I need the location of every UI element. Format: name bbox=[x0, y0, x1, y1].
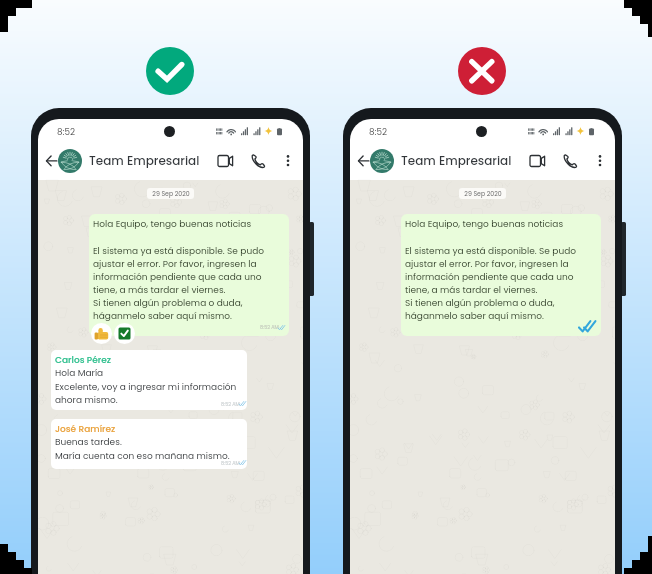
staticText: Hola Equipo, tengo buenas noticias El si… bbox=[93, 218, 264, 322]
button[interactable]: More options bbox=[278, 151, 298, 171]
button[interactable]: Back bbox=[42, 149, 66, 173]
staticText: 29 Sep 2020 bbox=[464, 189, 502, 198]
staticText: Carlos Pérez bbox=[55, 354, 111, 367]
staticText: 8:52 AM bbox=[221, 401, 240, 408]
button[interactable]: Voice call bbox=[561, 152, 581, 172]
button[interactable]: Team Empresarial profile bbox=[370, 149, 394, 173]
staticText: Buenas tardes. María cuenta con eso maña… bbox=[55, 436, 230, 462]
button[interactable]: Team Empresarial profile bbox=[58, 149, 82, 173]
staticText: José Ramírez bbox=[55, 423, 116, 436]
staticText: 8:52 bbox=[369, 126, 388, 138]
staticText: Hola Equipo, tengo buenas noticias El si… bbox=[405, 218, 576, 322]
button[interactable]: Video call bbox=[529, 151, 549, 171]
button[interactable]: Check reaction bbox=[114, 323, 135, 344]
button[interactable]: Carlos Pérez bbox=[51, 350, 247, 410]
button[interactable]: Team Empresarial bbox=[401, 152, 512, 169]
button[interactable]: Correct example bbox=[146, 47, 194, 95]
button[interactable]: Hola Equipo, tengo buenas noticias El si… bbox=[401, 214, 601, 336]
button[interactable]: Voice call bbox=[249, 152, 269, 172]
button[interactable]: Hola Equipo, tengo buenas noticias El si… bbox=[89, 214, 289, 336]
button[interactable]: Wrong example bbox=[458, 47, 506, 95]
button[interactable]: Thumbs up reaction bbox=[91, 323, 112, 344]
button[interactable]: Video call bbox=[217, 151, 237, 171]
button[interactable]: More options bbox=[590, 151, 610, 171]
button[interactable]: Team Empresarial bbox=[89, 152, 200, 169]
button[interactable]: José Ramírez bbox=[51, 419, 247, 469]
staticText: 8:52 AM bbox=[260, 324, 279, 331]
staticText: 8:52 AM bbox=[221, 460, 240, 467]
staticText: Hola María Excelente, voy a ingresar mi … bbox=[55, 367, 237, 406]
staticText: 8:52 bbox=[57, 126, 76, 138]
staticText: 29 Sep 2020 bbox=[152, 189, 190, 198]
button[interactable]: Back bbox=[354, 149, 378, 173]
